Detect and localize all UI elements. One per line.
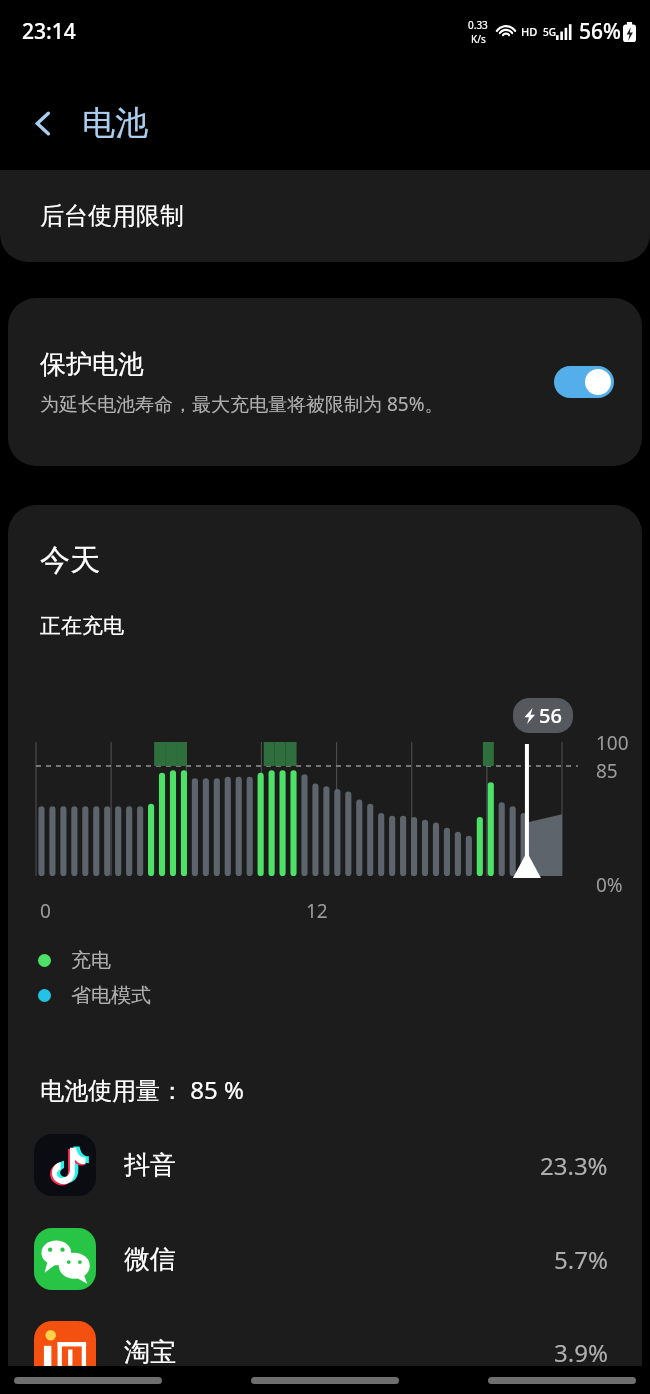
staticText: 0% [596, 872, 623, 898]
button[interactable]: Protect battery [554, 366, 614, 398]
staticText: 充电 [71, 948, 111, 973]
staticText: 省电模式 [71, 983, 151, 1008]
staticText: 0.33 [468, 18, 488, 32]
staticText: 0 [40, 898, 51, 924]
staticText: 电池 [82, 102, 148, 144]
staticText: 电池使用量： 85 % [40, 1073, 244, 1106]
staticText: 微信 [124, 1243, 176, 1276]
button[interactable]: 微信 [8, 1216, 642, 1302]
staticText: 85 [596, 758, 618, 784]
button[interactable]: 抖音 [8, 1122, 642, 1208]
button[interactable]: Navigation [251, 1377, 399, 1384]
staticText: 为延长电池寿命，最大充电量将被限制为 85%。 [40, 391, 444, 417]
staticText: K/s [471, 32, 486, 46]
staticText: 后台使用限制 [40, 201, 184, 231]
button[interactable]: 淘宝 [8, 1310, 642, 1394]
button[interactable]: 保护电池 [8, 298, 642, 466]
staticText: 23.3% [540, 1149, 608, 1182]
staticText: 100 [596, 730, 629, 756]
staticText: 正在充电 [40, 613, 124, 639]
staticText: 23:14 [22, 17, 76, 46]
staticText: 5G [543, 25, 556, 39]
staticText: 12 [306, 898, 328, 924]
button[interactable]: Navigation [488, 1377, 636, 1384]
staticText: 今天 [40, 541, 100, 579]
button[interactable]: Back [16, 96, 70, 150]
button[interactable]: Navigation [14, 1377, 162, 1384]
staticText: HD [521, 24, 538, 39]
button[interactable]: 后台使用限制 [0, 170, 650, 262]
staticText: 3.9% [554, 1336, 608, 1369]
staticText: 56% [579, 17, 621, 46]
staticText: 抖音 [124, 1149, 176, 1182]
staticText: 56 [539, 702, 562, 729]
staticText: 淘宝 [124, 1336, 176, 1369]
staticText: 保护电池 [40, 348, 144, 381]
staticText: 5.7% [554, 1243, 608, 1276]
